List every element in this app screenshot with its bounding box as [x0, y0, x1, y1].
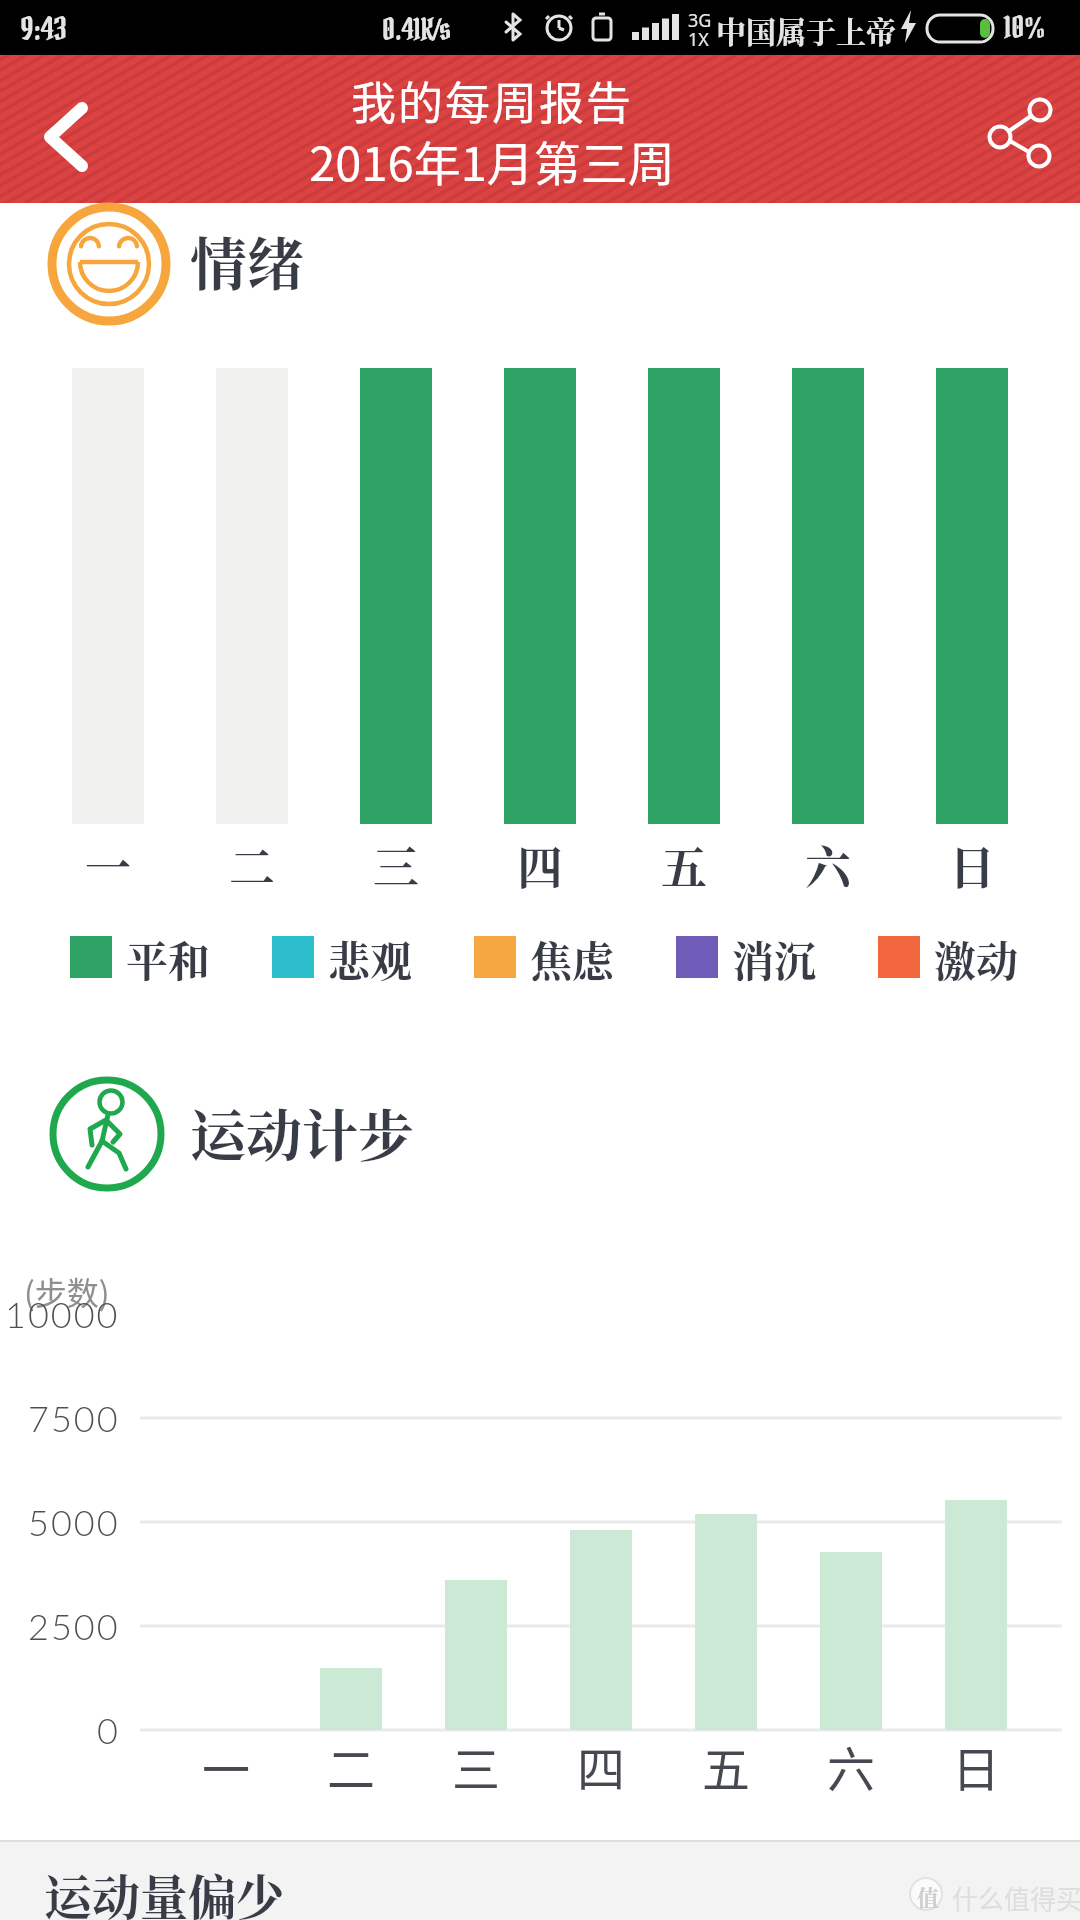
- staticText: 六: [805, 831, 851, 897]
- staticText: 消沉: [732, 929, 817, 989]
- button[interactable]: [14, 95, 114, 175]
- staticText: 5000: [28, 1500, 120, 1543]
- staticText: 运动量偏少: [44, 1860, 285, 1920]
- staticText: 激动: [934, 929, 1019, 989]
- button[interactable]: [960, 85, 1070, 185]
- staticText: 日: [952, 1731, 1001, 1801]
- staticText: 情绪: [190, 219, 304, 301]
- staticText: 三: [452, 1731, 501, 1801]
- staticText: 三: [373, 831, 419, 897]
- staticText: 值: [917, 1881, 940, 1913]
- staticText: 9:43: [20, 8, 67, 49]
- staticText: 二: [327, 1731, 376, 1801]
- staticText: 7500: [28, 1396, 120, 1439]
- staticText: 二: [229, 831, 275, 897]
- staticText: 1X: [688, 27, 709, 52]
- staticText: 10000: [5, 1292, 120, 1335]
- staticText: 悲观: [328, 929, 413, 989]
- staticText: 六: [827, 1731, 876, 1801]
- staticText: 平和: [126, 929, 211, 989]
- staticText: 一: [85, 831, 131, 897]
- staticText: 一: [202, 1731, 251, 1801]
- staticText: 3G: [688, 8, 712, 33]
- staticText: 中国属于上帝: [716, 8, 896, 51]
- staticText: 五: [702, 1731, 751, 1801]
- staticText: 日: [949, 831, 995, 897]
- staticText: 四: [517, 831, 563, 897]
- staticText: 四: [577, 1731, 626, 1801]
- staticText: (步数): [24, 1268, 110, 1314]
- staticText: 焦虑: [530, 929, 615, 989]
- staticText: 2500: [28, 1604, 120, 1647]
- staticText: 0: [97, 1708, 120, 1751]
- staticText: 我的每周报告: [0, 68, 1032, 133]
- staticText: 五: [661, 831, 707, 897]
- staticText: 0.41K/s: [382, 10, 452, 49]
- staticText: 10%: [1004, 8, 1046, 47]
- staticText: 2016年1月第三周: [0, 126, 1032, 194]
- staticText: 运动计步: [190, 1092, 414, 1172]
- staticText: 什么值得买: [952, 1879, 1080, 1917]
